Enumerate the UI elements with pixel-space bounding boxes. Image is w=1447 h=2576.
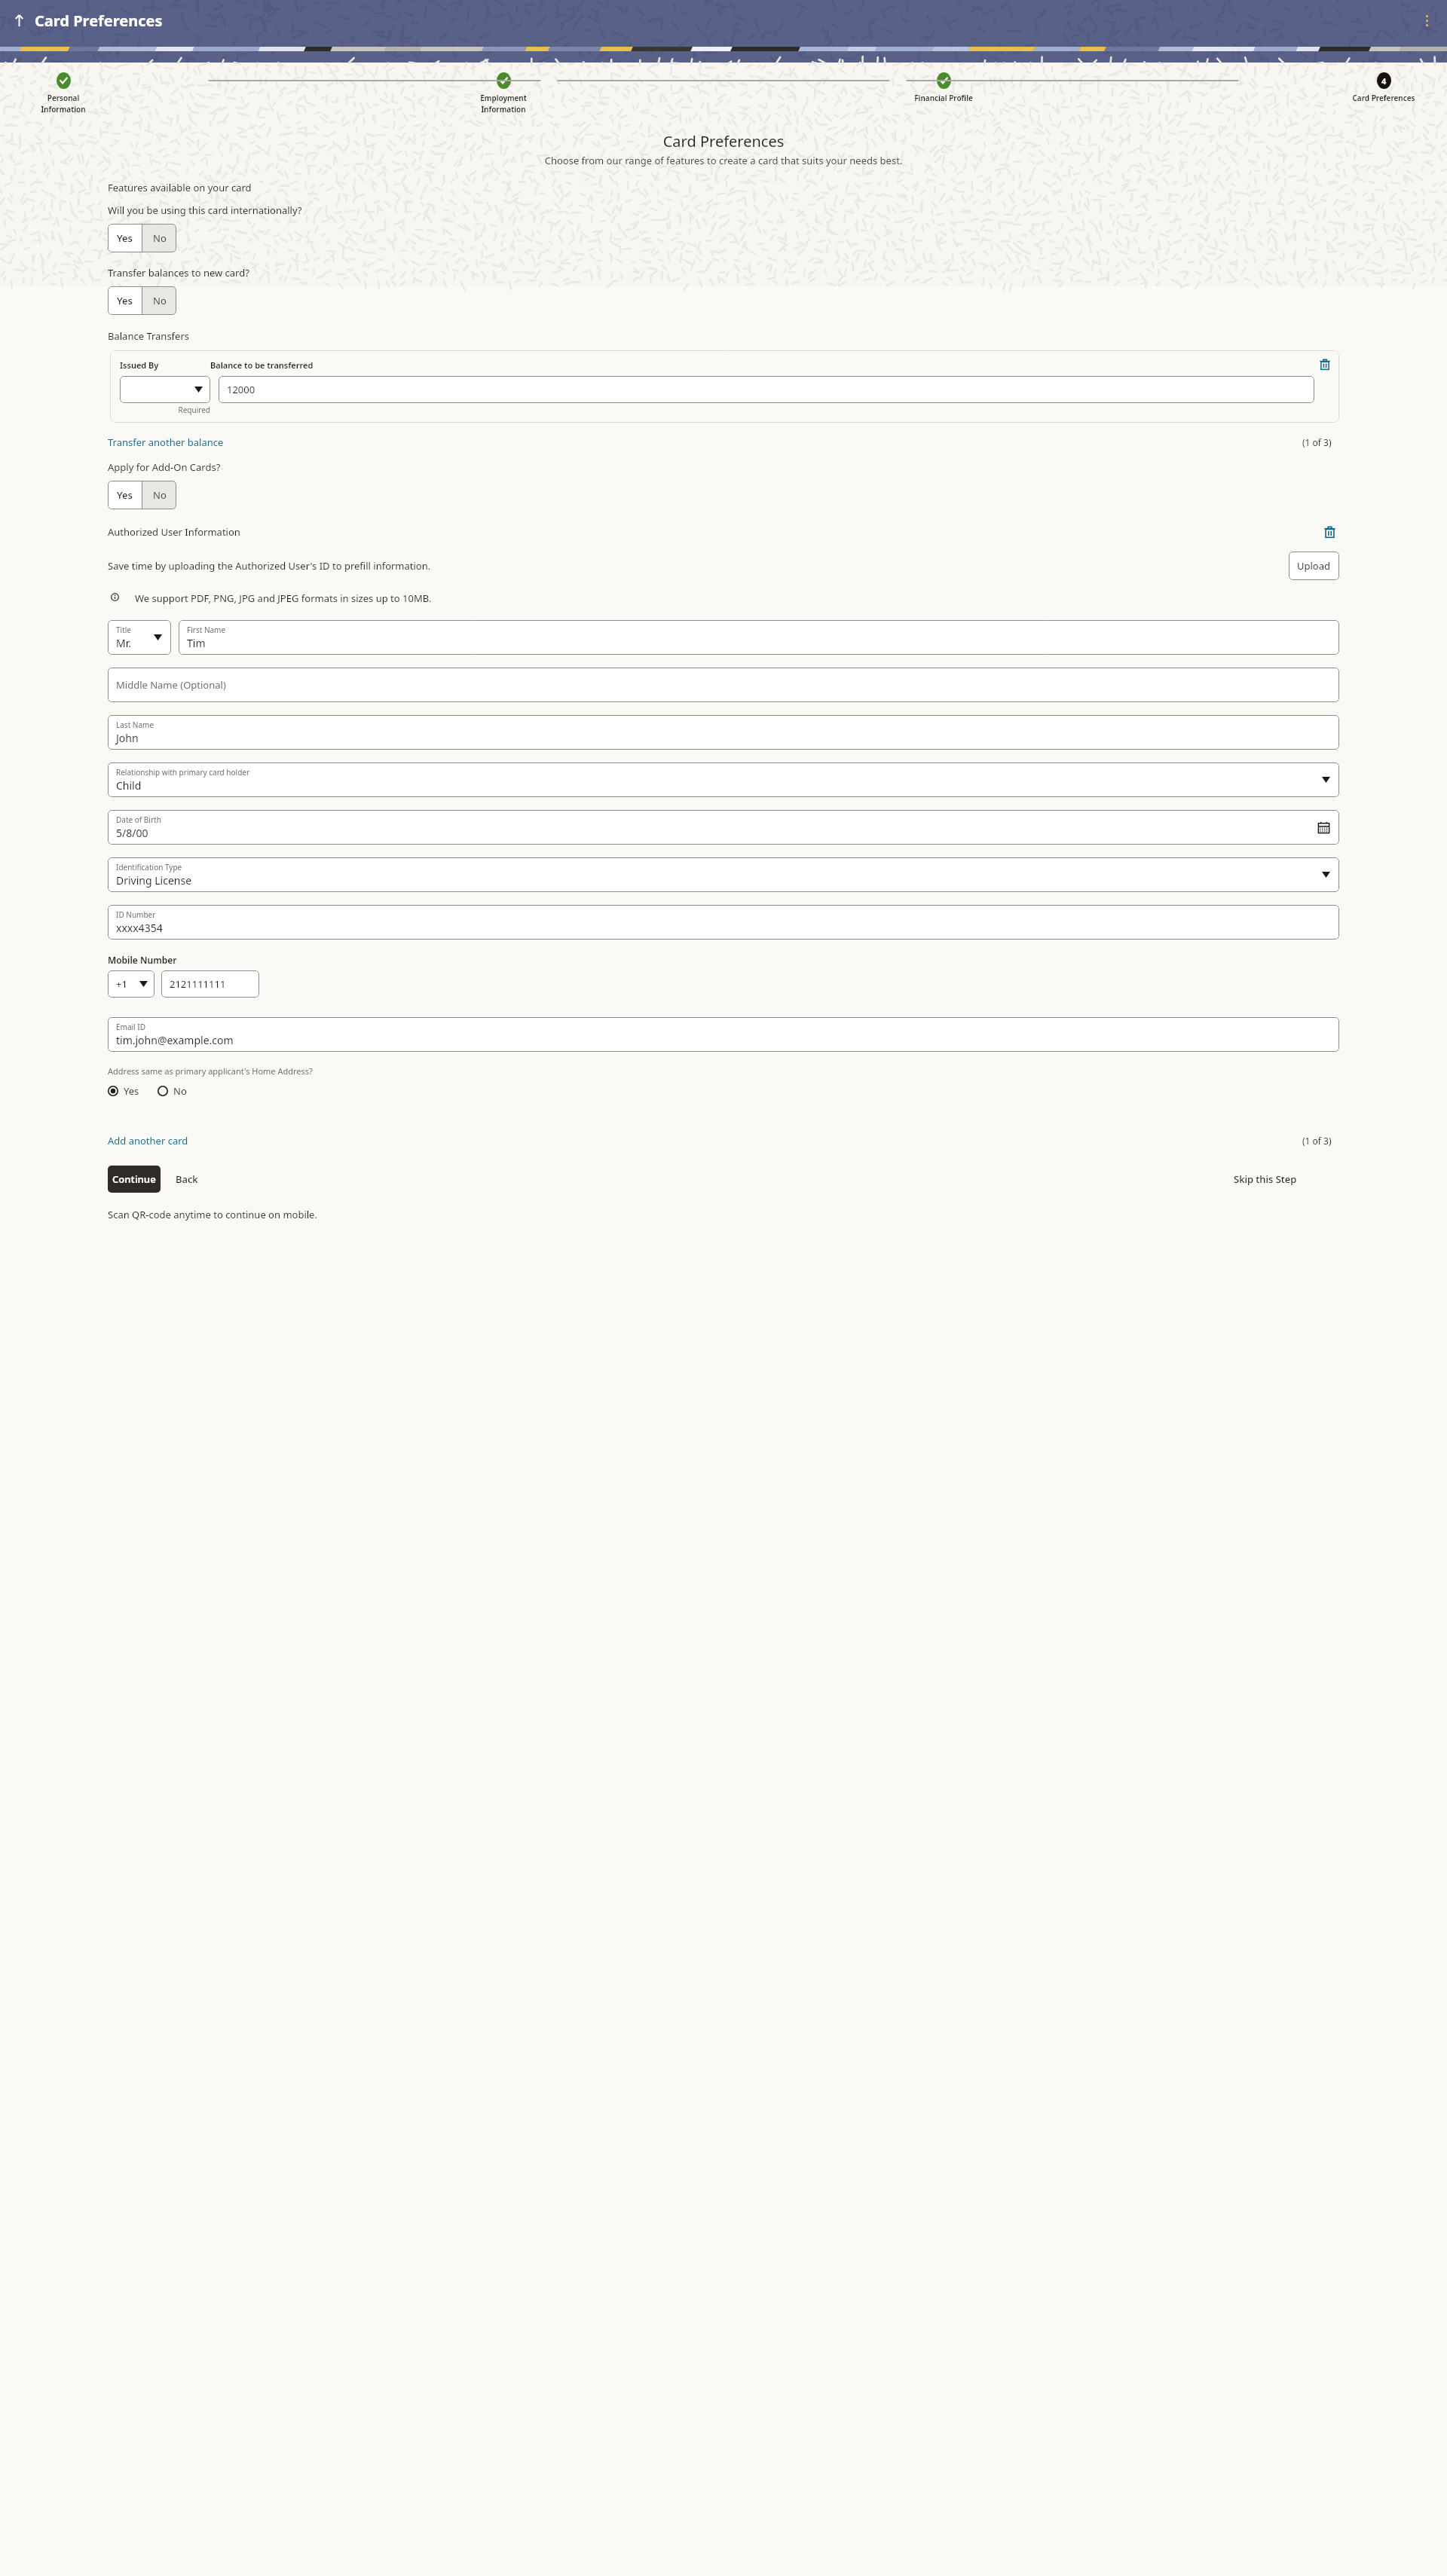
staticText: Tim	[187, 636, 206, 650]
button[interactable]: Yes	[108, 481, 142, 509]
staticText: Issued By	[120, 359, 210, 371]
button[interactable]: Identification Type	[108, 857, 1339, 892]
button[interactable]: More options	[1415, 9, 1438, 32]
staticText: Will you be using this card internationa…	[108, 203, 302, 217]
button[interactable]: Relationship with primary card holder	[108, 762, 1339, 797]
staticText: Driving License	[116, 873, 192, 888]
staticText: xxxx4354	[116, 921, 163, 935]
staticText: Email ID	[116, 1022, 145, 1032]
staticText: No	[153, 294, 167, 307]
staticText: Choose from our range of features to cre…	[104, 154, 1343, 167]
button[interactable]: No	[142, 481, 176, 509]
staticText: No	[153, 231, 167, 245]
staticText: 2121111111	[170, 977, 226, 991]
staticText: Transfer balances to new card?	[108, 266, 249, 280]
staticText: 5/8/00	[116, 826, 148, 840]
button[interactable]: Continue	[108, 1166, 161, 1193]
button[interactable]: ID Number	[108, 905, 1339, 940]
staticText: No	[153, 488, 167, 502]
button[interactable]: Yes	[108, 286, 142, 315]
button[interactable]: Add another card	[108, 1134, 188, 1147]
staticText: Yes	[117, 294, 133, 307]
button[interactable]: Transfer another balance	[108, 435, 224, 449]
button[interactable]: 2121111111	[161, 970, 259, 998]
staticText: (1 of 3)	[1302, 436, 1332, 448]
staticText: Middle Name (Optional)	[116, 678, 226, 692]
staticText: Yes	[117, 231, 133, 245]
staticText: Continue	[112, 1172, 156, 1186]
button[interactable]: Financial Profile	[906, 72, 981, 103]
button[interactable]: Last Name	[108, 715, 1339, 750]
staticText: (1 of 3)	[1302, 1135, 1332, 1147]
button[interactable]: 4	[1346, 72, 1421, 103]
staticText: Address same as primary applicant's Home…	[108, 1065, 313, 1077]
staticText: Yes	[117, 488, 133, 502]
staticText: ID Number	[116, 909, 156, 920]
button[interactable]: Pick date	[1317, 821, 1330, 834]
button[interactable]: No	[158, 1084, 187, 1098]
button[interactable]: No	[142, 286, 176, 315]
staticText: No	[173, 1084, 187, 1098]
button[interactable]: Back	[8, 9, 30, 32]
button[interactable]: Email ID	[108, 1017, 1339, 1052]
button[interactable]: Back	[176, 1166, 198, 1193]
staticText: Upload	[1297, 559, 1331, 573]
staticText: Balance to be transferred	[210, 359, 1319, 371]
button[interactable]: Delete	[1319, 359, 1331, 371]
staticText: Skip this Step	[1234, 1172, 1297, 1186]
staticText: John	[116, 731, 139, 745]
staticText: Employment Information	[466, 93, 541, 115]
staticText: Title	[116, 625, 131, 635]
staticText: Last Name	[116, 720, 154, 730]
staticText: Balance Transfers	[108, 329, 190, 343]
staticText: Personal Information	[26, 93, 101, 115]
button[interactable]: Date of Birth	[108, 810, 1339, 845]
button[interactable]: Title	[108, 620, 171, 655]
staticText: 12000	[227, 383, 255, 396]
button[interactable]: No	[142, 224, 176, 252]
button[interactable]: First Name	[179, 620, 1339, 655]
staticText: Scan QR-code anytime to continue on mobi…	[108, 1208, 317, 1221]
button[interactable]: Yes	[108, 1084, 139, 1098]
staticText: Mr.	[116, 636, 131, 650]
button[interactable]: Personal Information	[26, 72, 101, 115]
staticText: tim.john@example.com	[116, 1033, 234, 1047]
staticText: Identification Type	[116, 862, 182, 872]
button[interactable]: Skip this Step	[1234, 1166, 1297, 1193]
staticText: Authorized User Information	[108, 525, 240, 539]
staticText: Child	[116, 778, 142, 793]
staticText: Card Preferences	[0, 131, 1447, 151]
button[interactable]: Employment Information	[466, 72, 541, 115]
button[interactable]: Yes	[108, 224, 142, 252]
button[interactable]	[120, 376, 210, 403]
button[interactable]: Upload	[1289, 552, 1339, 580]
staticText: Required	[120, 405, 210, 415]
button[interactable]: Delete	[1323, 526, 1336, 539]
staticText: Yes	[124, 1084, 139, 1098]
button[interactable]: 12000	[219, 376, 1314, 403]
staticText: First Name	[187, 625, 226, 635]
staticText: Date of Birth	[116, 814, 161, 825]
staticText: Apply for Add-On Cards?	[108, 460, 221, 474]
staticText: Save time by uploading the Authorized Us…	[108, 559, 1281, 573]
staticText: 4	[1381, 75, 1387, 87]
staticText: Back	[176, 1172, 198, 1186]
staticText: Mobile Number	[108, 954, 177, 966]
staticText: Financial Profile	[906, 93, 981, 103]
button[interactable]: Middle Name (Optional)	[108, 668, 1339, 702]
staticText: Card Preferences	[1346, 93, 1421, 103]
staticText: We support PDF, PNG, JPG and JPEG format…	[135, 591, 1339, 605]
staticText: Features available on your card	[108, 181, 252, 194]
button[interactable]: +1	[108, 970, 154, 998]
staticText: +1	[116, 977, 127, 991]
staticText: Relationship with primary card holder	[116, 767, 250, 778]
staticText: Card Preferences	[35, 11, 163, 31]
